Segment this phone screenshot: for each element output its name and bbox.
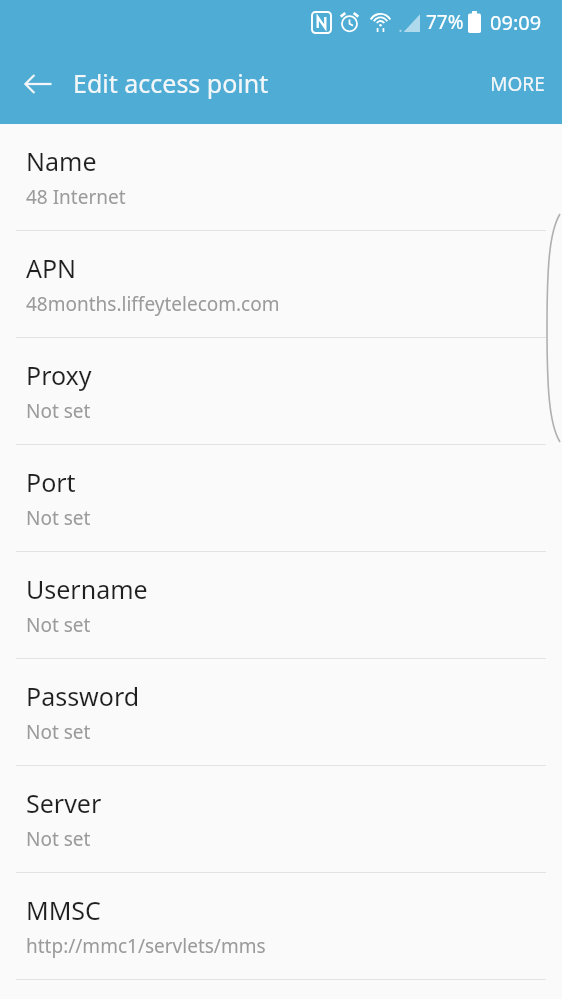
staticText: Port <box>26 465 76 499</box>
staticText: Edit access point <box>73 66 269 100</box>
staticText: MMSC <box>26 893 101 927</box>
staticText: http://mmc1/servlets/mms <box>26 933 266 959</box>
staticText: Proxy <box>26 358 92 392</box>
button[interactable]: Proxy <box>0 338 562 444</box>
staticText: Name <box>26 144 97 178</box>
staticText: Server <box>26 786 102 820</box>
button[interactable]: Port <box>0 445 562 551</box>
staticText: Password <box>26 679 140 713</box>
staticText: 09:09 <box>490 9 542 36</box>
staticText: Username <box>26 572 148 606</box>
button[interactable]: MORE <box>473 44 562 124</box>
button[interactable]: Username <box>0 552 562 658</box>
button[interactable]: Name <box>0 124 562 230</box>
button[interactable]: Server <box>0 766 562 872</box>
staticText: Not set <box>26 826 91 852</box>
staticText: Not set <box>26 398 91 424</box>
button[interactable]: APN <box>0 231 562 337</box>
staticText: Not set <box>26 612 91 638</box>
staticText: APN <box>26 251 77 285</box>
staticText: Not set <box>26 505 91 531</box>
staticText: MORE <box>490 71 545 97</box>
button[interactable]: MMSC <box>0 873 562 979</box>
button[interactable]: Navigate up <box>10 56 66 112</box>
staticText: 48 Internet <box>26 184 126 210</box>
staticText: Not set <box>26 719 91 745</box>
button[interactable]: Password <box>0 659 562 765</box>
staticText: 77% <box>426 9 464 35</box>
staticText: 48months.liffeytelecom.com <box>26 291 280 317</box>
